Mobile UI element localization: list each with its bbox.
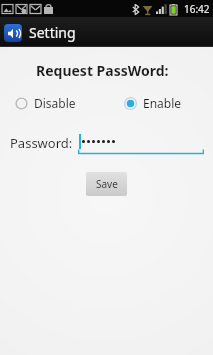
staticText: Request PassWord: (36, 61, 213, 80)
staticText: Enable (143, 95, 182, 111)
button[interactable]: Password input (78, 131, 204, 155)
staticText: 16:42 (184, 2, 210, 16)
staticText: Setting (29, 23, 76, 42)
staticText: Password: (10, 134, 73, 152)
button[interactable]: Save (86, 172, 127, 196)
button[interactable]: Disable (13, 93, 78, 113)
other: App icon (4, 24, 22, 42)
button[interactable]: Enable (122, 93, 184, 113)
staticText: Save (96, 177, 118, 191)
staticText: Disable (34, 95, 76, 111)
